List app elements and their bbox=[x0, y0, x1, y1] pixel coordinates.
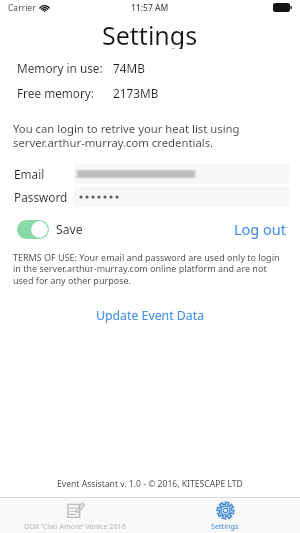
staticText: Save bbox=[56, 221, 83, 238]
button[interactable]: Settings bbox=[150, 498, 300, 533]
staticText: Log out bbox=[234, 219, 287, 239]
button[interactable]: Update Event Data bbox=[90, 304, 211, 327]
staticText: Password bbox=[14, 189, 68, 205]
staticText: You can login to retrive your heat list … bbox=[13, 121, 286, 151]
staticText: 11:57 AM bbox=[131, 2, 169, 14]
staticText: Email bbox=[14, 166, 45, 182]
button[interactable] bbox=[74, 187, 290, 207]
staticText: 74MB bbox=[113, 60, 145, 76]
staticText: TERMS OF USE: Your email and password ar… bbox=[13, 251, 284, 287]
staticText: Free memory: bbox=[17, 85, 95, 101]
staticText: DOR 'Ciao Amore' Venice 2016 bbox=[24, 521, 126, 531]
button[interactable]: Save bbox=[17, 220, 83, 239]
staticText: Update Event Data bbox=[96, 307, 205, 324]
staticText: Carrier bbox=[8, 2, 36, 14]
button[interactable]: Log out bbox=[234, 216, 287, 242]
staticText: Settings bbox=[211, 521, 239, 531]
staticText: Settings bbox=[102, 18, 198, 49]
staticText: Memory in use: bbox=[17, 60, 103, 76]
button[interactable]: DOR 'Ciao Amore' Venice 2016 bbox=[0, 498, 150, 533]
button[interactable] bbox=[74, 164, 290, 184]
staticText: 2173MB bbox=[113, 85, 159, 101]
staticText: Event Assistant v. 1.0 - © 2016, KITESCA… bbox=[57, 478, 243, 490]
